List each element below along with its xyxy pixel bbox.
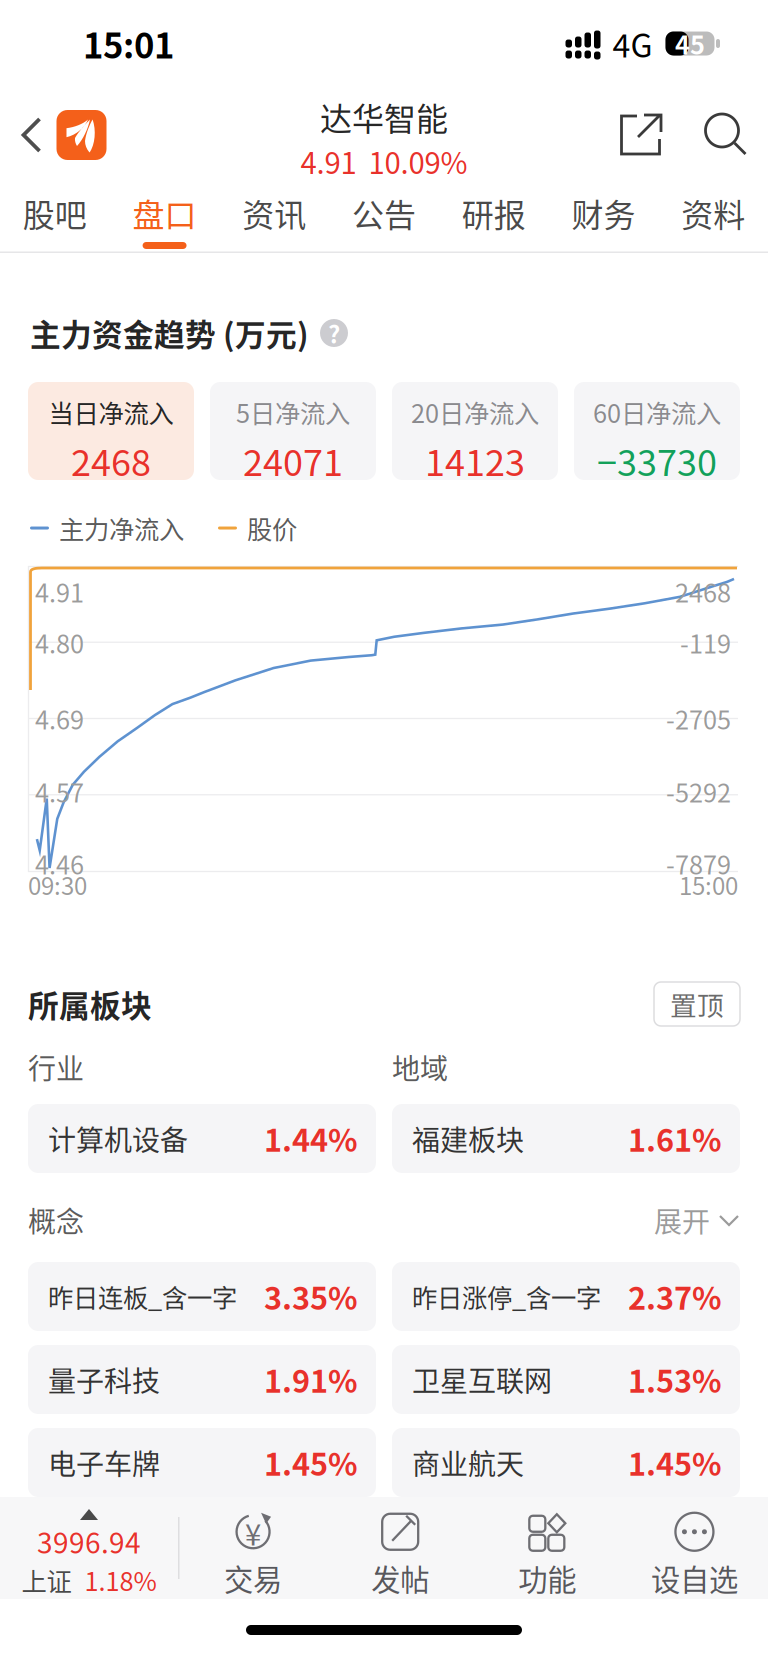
staticText: 24071 xyxy=(243,434,343,486)
staticText: 行业 xyxy=(28,1047,84,1087)
staticText: 1.53% xyxy=(628,1357,722,1402)
button[interactable]: 资料 xyxy=(658,181,768,253)
button[interactable]: 展开 xyxy=(654,1200,740,1240)
staticText: 置顶 xyxy=(670,985,724,1023)
button[interactable]: App xyxy=(53,90,110,180)
staticText: 45 xyxy=(675,25,705,62)
staticText: 14123 xyxy=(425,434,525,486)
staticText: ¥ xyxy=(245,1511,261,1554)
staticText: 卫星互联网 xyxy=(412,1359,552,1400)
staticText: 3.35% xyxy=(264,1274,358,1319)
staticText: 电子车牌 xyxy=(48,1442,160,1483)
staticText: 上证 xyxy=(21,1561,71,1598)
button[interactable]: 福建板块 xyxy=(392,1104,740,1173)
staticText: 主力资金趋势 (万元) xyxy=(30,311,309,355)
staticText: 概念 xyxy=(28,1200,84,1240)
staticText: 15:01 xyxy=(83,18,174,69)
staticText: 福建板块 xyxy=(412,1118,524,1159)
staticText: 2.37% xyxy=(628,1274,722,1319)
staticText: 1.45% xyxy=(264,1440,358,1485)
staticText: 4.57 xyxy=(35,773,84,810)
staticText: 当日净流入 xyxy=(48,394,173,430)
staticText: 3996.94 xyxy=(37,1521,141,1561)
button[interactable]: 3996.94 xyxy=(0,1497,178,1599)
button[interactable]: 卫星互联网 xyxy=(392,1345,740,1414)
staticText: 1.44% xyxy=(264,1116,358,1161)
staticText: 4.80 xyxy=(35,624,84,661)
staticText: -5292 xyxy=(666,773,731,810)
staticText: 4.46 xyxy=(35,845,84,882)
staticText: 设自选 xyxy=(651,1557,738,1599)
staticText: 功能 xyxy=(518,1557,576,1599)
button[interactable]: 盘口 xyxy=(110,181,219,253)
button[interactable]: Share xyxy=(587,90,695,180)
button[interactable]: 设自选 xyxy=(621,1497,768,1599)
staticText: 昨日连板_含一字 xyxy=(48,1278,237,1315)
staticText: 09:30 xyxy=(28,867,87,902)
staticText: 1.61% xyxy=(628,1116,722,1161)
staticText: -119 xyxy=(680,624,731,661)
staticText: 商业航天 xyxy=(412,1442,524,1483)
staticText: 1.18% xyxy=(84,1561,156,1598)
button[interactable]: 商业航天 xyxy=(392,1428,740,1497)
staticText: −33730 xyxy=(597,434,717,486)
staticText: 4.91 xyxy=(300,140,356,182)
staticText: 4.69 xyxy=(35,700,84,737)
button[interactable]: Back xyxy=(0,90,53,180)
button[interactable]: 计算机设备 xyxy=(28,1104,376,1173)
staticText: 资料 xyxy=(681,190,745,236)
staticText: 计算机设备 xyxy=(48,1118,188,1159)
button[interactable]: 发帖 xyxy=(327,1497,474,1599)
staticText: 15:00 xyxy=(679,867,738,902)
staticText: 盘口 xyxy=(133,190,197,236)
staticText: 公告 xyxy=(352,190,416,236)
button[interactable]: 财务 xyxy=(549,181,658,253)
button[interactable]: ¥ xyxy=(179,1497,327,1599)
staticText: 2468 xyxy=(675,573,731,610)
staticText: 资讯 xyxy=(242,190,306,236)
button[interactable]: 置顶 xyxy=(654,982,740,1026)
button[interactable]: 20日净流入 xyxy=(392,382,558,480)
staticText: 股价 xyxy=(247,510,297,546)
button[interactable]: 昨日涨停_含一字 xyxy=(392,1262,740,1331)
staticText: 量子科技 xyxy=(48,1359,160,1400)
staticText: 发帖 xyxy=(371,1557,429,1599)
button[interactable]: 资讯 xyxy=(219,181,329,253)
staticText: -7879 xyxy=(666,845,731,882)
button[interactable]: 60日净流入 xyxy=(574,382,740,480)
staticText: 股吧 xyxy=(23,190,87,236)
staticText: 主力净流入 xyxy=(59,510,184,546)
staticText: 10.09% xyxy=(368,140,467,182)
staticText: 1.91% xyxy=(264,1357,358,1402)
button[interactable]: Search xyxy=(695,90,758,180)
staticText: 1.45% xyxy=(628,1440,722,1485)
staticText: 研报 xyxy=(462,190,526,236)
button[interactable]: 当日净流入 xyxy=(28,382,194,480)
staticText: 2468 xyxy=(71,434,151,486)
staticText: 财务 xyxy=(571,190,635,236)
button[interactable]: 功能 xyxy=(474,1497,621,1599)
staticText: 20日净流入 xyxy=(411,394,539,430)
button[interactable]: 量子科技 xyxy=(28,1345,376,1414)
button[interactable]: 研报 xyxy=(439,181,549,253)
staticText: 4.91 xyxy=(35,573,84,610)
staticText: 5日净流入 xyxy=(236,394,350,430)
button[interactable]: 公告 xyxy=(329,181,439,253)
staticText: -2705 xyxy=(666,700,731,737)
staticText: 展开 xyxy=(654,1200,710,1240)
staticText: 交易 xyxy=(224,1557,282,1599)
staticText: 60日净流入 xyxy=(593,394,721,430)
button[interactable]: 股吧 xyxy=(0,181,110,253)
staticText: ? xyxy=(328,316,340,350)
staticText: 4G xyxy=(612,20,652,67)
staticText: 达华智能 xyxy=(320,94,448,140)
staticText: 所属板块 xyxy=(28,982,152,1026)
button[interactable]: 昨日连板_含一字 xyxy=(28,1262,376,1331)
staticText: 昨日涨停_含一字 xyxy=(412,1278,601,1315)
button[interactable]: 电子车牌 xyxy=(28,1428,376,1497)
button[interactable]: 5日净流入 xyxy=(210,382,376,480)
staticText: 地域 xyxy=(392,1047,448,1087)
